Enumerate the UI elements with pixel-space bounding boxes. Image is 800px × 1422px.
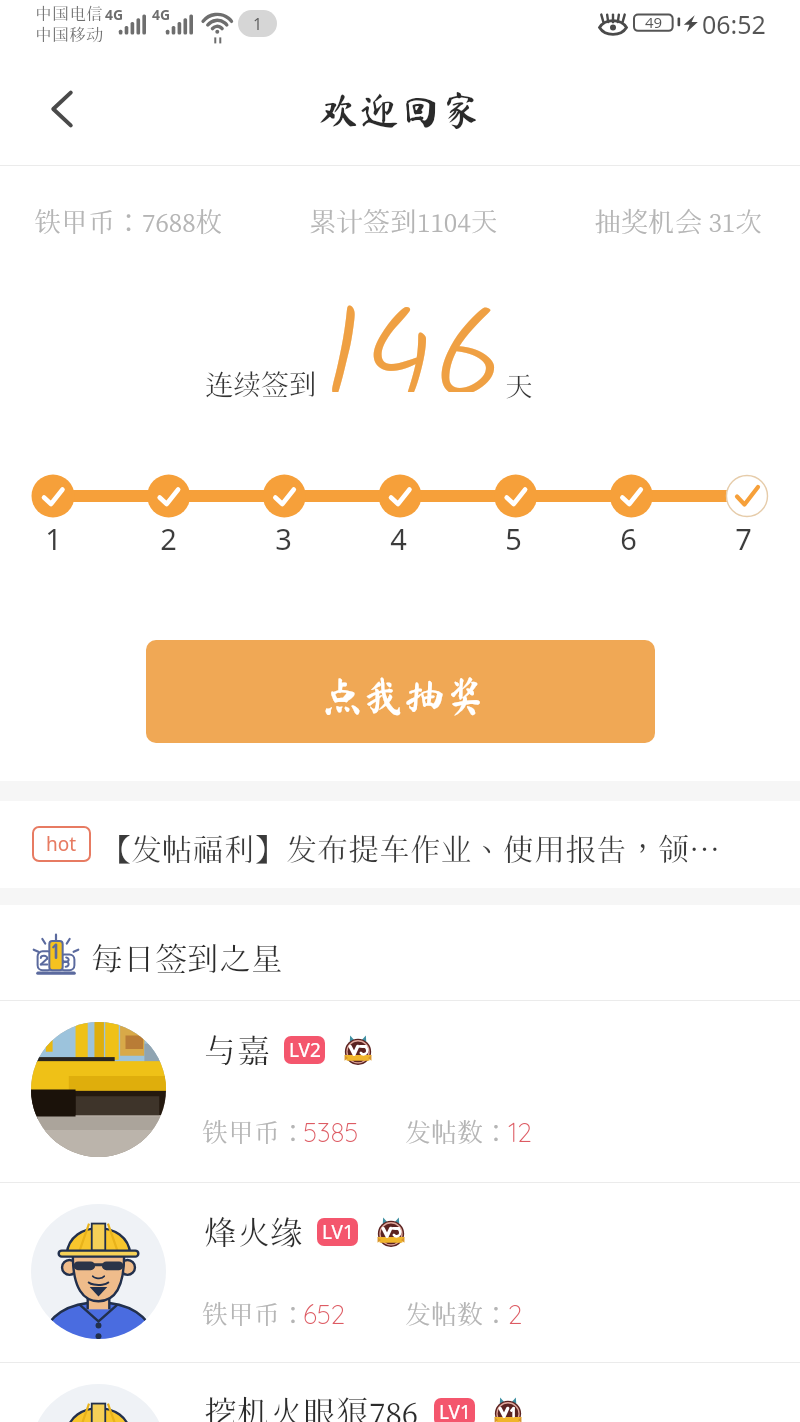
staticText: 每日签到之星 [91,939,284,978]
button[interactable]: Day 2 sign-in [140,473,196,553]
button[interactable]: hot [0,801,800,888]
button[interactable]: Day 5 sign-in [485,473,541,553]
staticText: 天 [505,369,534,403]
staticText: 铁甲币：7688枚 [34,205,223,238]
staticText: 中国电信 [35,3,103,24]
staticText: 146 [322,262,505,392]
staticText: 6 [620,519,637,558]
staticText: 1 [45,519,62,558]
button[interactable]: 烽火缘 [0,1183,800,1364]
staticText: 5385 [303,1116,359,1149]
staticText: 4 [390,519,407,558]
staticText: 抽奖机会 31次 [594,205,763,238]
button[interactable]: Day 3 sign-in [255,473,311,553]
staticText: 12 [508,1116,532,1149]
button[interactable]: 挖机火眼狼786 [0,1363,800,1422]
staticText: 5 [505,519,522,558]
staticText: 652 [303,1298,346,1331]
staticText: 铁甲币： [202,1116,307,1148]
staticText: 【发帖福利】发布提车作业、使用报告，领… [100,830,720,868]
staticText: 2 [160,519,177,558]
staticText: 累计签到1104天 [309,205,498,238]
staticText: LV1 [322,1219,354,1245]
staticText: 1 [253,13,263,35]
staticText: 4G [105,5,124,24]
button[interactable]: Back [31,78,93,140]
staticText: 挖机火眼狼786 [204,1392,419,1422]
button[interactable]: 与嘉 [0,1001,800,1182]
staticText: 欢迎回家 [318,89,482,130]
button[interactable]: 点我抽奖 [146,640,655,743]
button[interactable]: Day 7 sign-in [715,473,771,553]
button[interactable]: Day 1 sign-in [25,473,81,553]
staticText: 49 [645,12,663,32]
staticText: 发帖数： [405,1116,510,1148]
staticText: 3 [275,519,292,558]
staticText: 铁甲币： [202,1298,307,1330]
staticText: 7 [735,519,752,558]
staticText: 4G [152,5,171,24]
button[interactable]: Day 4 sign-in [370,473,426,553]
staticText: 2 [508,1298,523,1331]
staticText: 烽火缘 [204,1212,303,1252]
staticText: 与嘉 [204,1030,270,1070]
staticText: LV2 [289,1037,321,1063]
staticText: 中国移动 [35,24,103,45]
button[interactable]: Day 6 sign-in [600,473,656,553]
staticText: 发帖数： [405,1298,510,1330]
staticText: 连续签到 [205,367,318,401]
staticText: 点我抽奖 [322,675,486,716]
staticText: LV1 [439,1399,471,1422]
staticText: hot [46,831,77,857]
staticText: 06:52 [702,7,766,41]
